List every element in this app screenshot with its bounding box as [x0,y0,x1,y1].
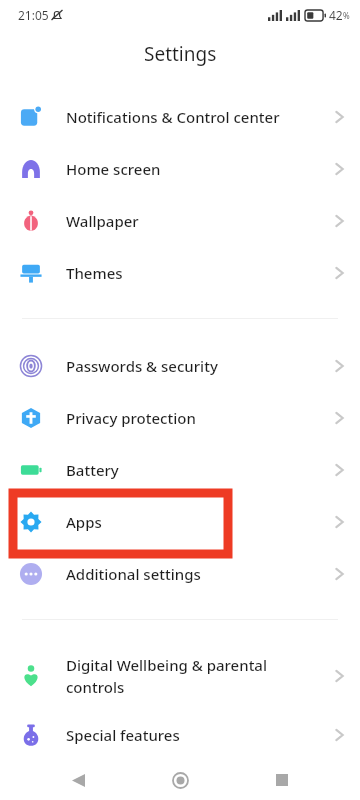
button[interactable]: Special features [0,709,360,761]
button[interactable]: Notifications & Control center [0,91,360,143]
button[interactable]: Battery [0,444,360,496]
staticText: Wallpaper [66,211,335,231]
staticText: 42 [329,7,343,23]
staticText: Notifications & Control center [66,107,335,127]
button[interactable]: Home [156,760,204,800]
button[interactable]: Wallpaper [0,195,360,247]
staticText: % [343,10,350,21]
staticText: Privacy protection [66,408,335,428]
button[interactable]: Recent apps [258,760,306,800]
staticText: 21:05 [18,7,49,23]
staticText: Special features [66,725,335,745]
button[interactable]: Back [54,760,102,800]
staticText: Home screen [66,159,335,179]
staticText: controls [66,677,125,697]
staticText: Additional settings [66,564,335,584]
button[interactable]: Additional settings [0,548,360,600]
button[interactable]: Home screen [0,143,360,195]
staticText: Digital Wellbeing & parental [66,655,268,675]
button[interactable]: Privacy protection [0,392,360,444]
button[interactable]: Digital Wellbeing & parental [0,643,360,709]
button[interactable]: Passwords & security [0,340,360,392]
button[interactable]: Themes [0,247,360,299]
staticText: Settings [144,41,217,67]
button[interactable]: Apps [0,496,360,548]
staticText: Battery [66,460,335,480]
staticText: Apps [66,512,335,532]
staticText: Themes [66,263,335,283]
staticText: Passwords & security [66,356,335,376]
